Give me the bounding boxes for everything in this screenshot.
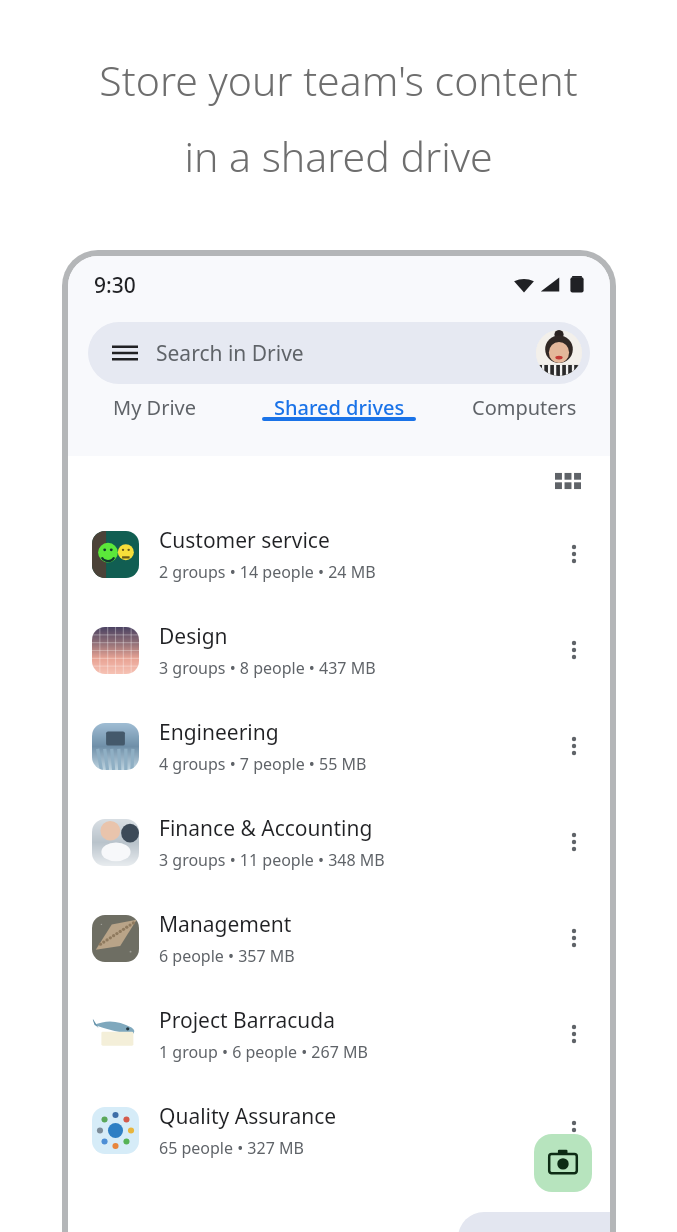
- button[interactable]: Engineering: [68, 698, 610, 794]
- staticText: Search in Drive: [156, 339, 304, 368]
- button[interactable]: Shared drives: [240, 394, 438, 421]
- staticText: Computers: [472, 394, 577, 421]
- staticText: Finance & Accounting: [159, 814, 373, 843]
- button[interactable]: Computers: [438, 394, 610, 421]
- button[interactable]: Account: [536, 330, 582, 376]
- staticText: 4 groups • 7 people • 55 MB: [159, 753, 367, 775]
- button[interactable]: Customer service: [68, 506, 610, 602]
- button[interactable]: Switch to grid view: [548, 461, 588, 501]
- button[interactable]: More options: [552, 916, 596, 960]
- staticText: 3 groups • 11 people • 348 MB: [159, 849, 385, 871]
- staticText: Shared drives: [274, 394, 405, 421]
- button[interactable]: More options: [552, 1012, 596, 1056]
- staticText: 2 groups • 14 people • 24 MB: [159, 561, 376, 583]
- staticText: 9:30: [94, 271, 136, 300]
- staticText: Engineering: [159, 718, 279, 747]
- button[interactable]: More options: [552, 532, 596, 576]
- staticText: 3 groups • 8 people • 437 MB: [159, 657, 376, 679]
- button[interactable]: Project Barracuda: [68, 986, 610, 1082]
- button[interactable]: More options: [552, 1108, 596, 1152]
- button[interactable]: Quality Assurance: [68, 1082, 610, 1178]
- button[interactable]: More options: [552, 628, 596, 672]
- staticText: Management: [159, 910, 292, 939]
- staticText: Project Barracuda: [159, 1006, 335, 1035]
- staticText: 1 group • 6 people • 267 MB: [159, 1041, 368, 1063]
- staticText: 65 people • 327 MB: [159, 1137, 304, 1159]
- staticText: Quality Assurance: [159, 1102, 337, 1131]
- staticText: Store your team's content: [99, 52, 578, 108]
- staticText: My Drive: [113, 394, 196, 421]
- button[interactable]: Finance & Accounting: [68, 794, 610, 890]
- button[interactable]: My Drive: [68, 394, 240, 421]
- button[interactable]: Design: [68, 602, 610, 698]
- button[interactable]: Scan with camera: [534, 1134, 592, 1192]
- button[interactable]: Management: [68, 890, 610, 986]
- button[interactable]: More options: [552, 820, 596, 864]
- button[interactable]: Open navigation menu: [88, 322, 590, 384]
- staticText: Design: [159, 622, 228, 651]
- staticText: 6 people • 357 MB: [159, 945, 295, 967]
- staticText: in a shared drive: [184, 128, 493, 184]
- button[interactable]: Open navigation menu: [108, 336, 142, 370]
- staticText: Customer service: [159, 526, 330, 555]
- button[interactable]: More options: [552, 724, 596, 768]
